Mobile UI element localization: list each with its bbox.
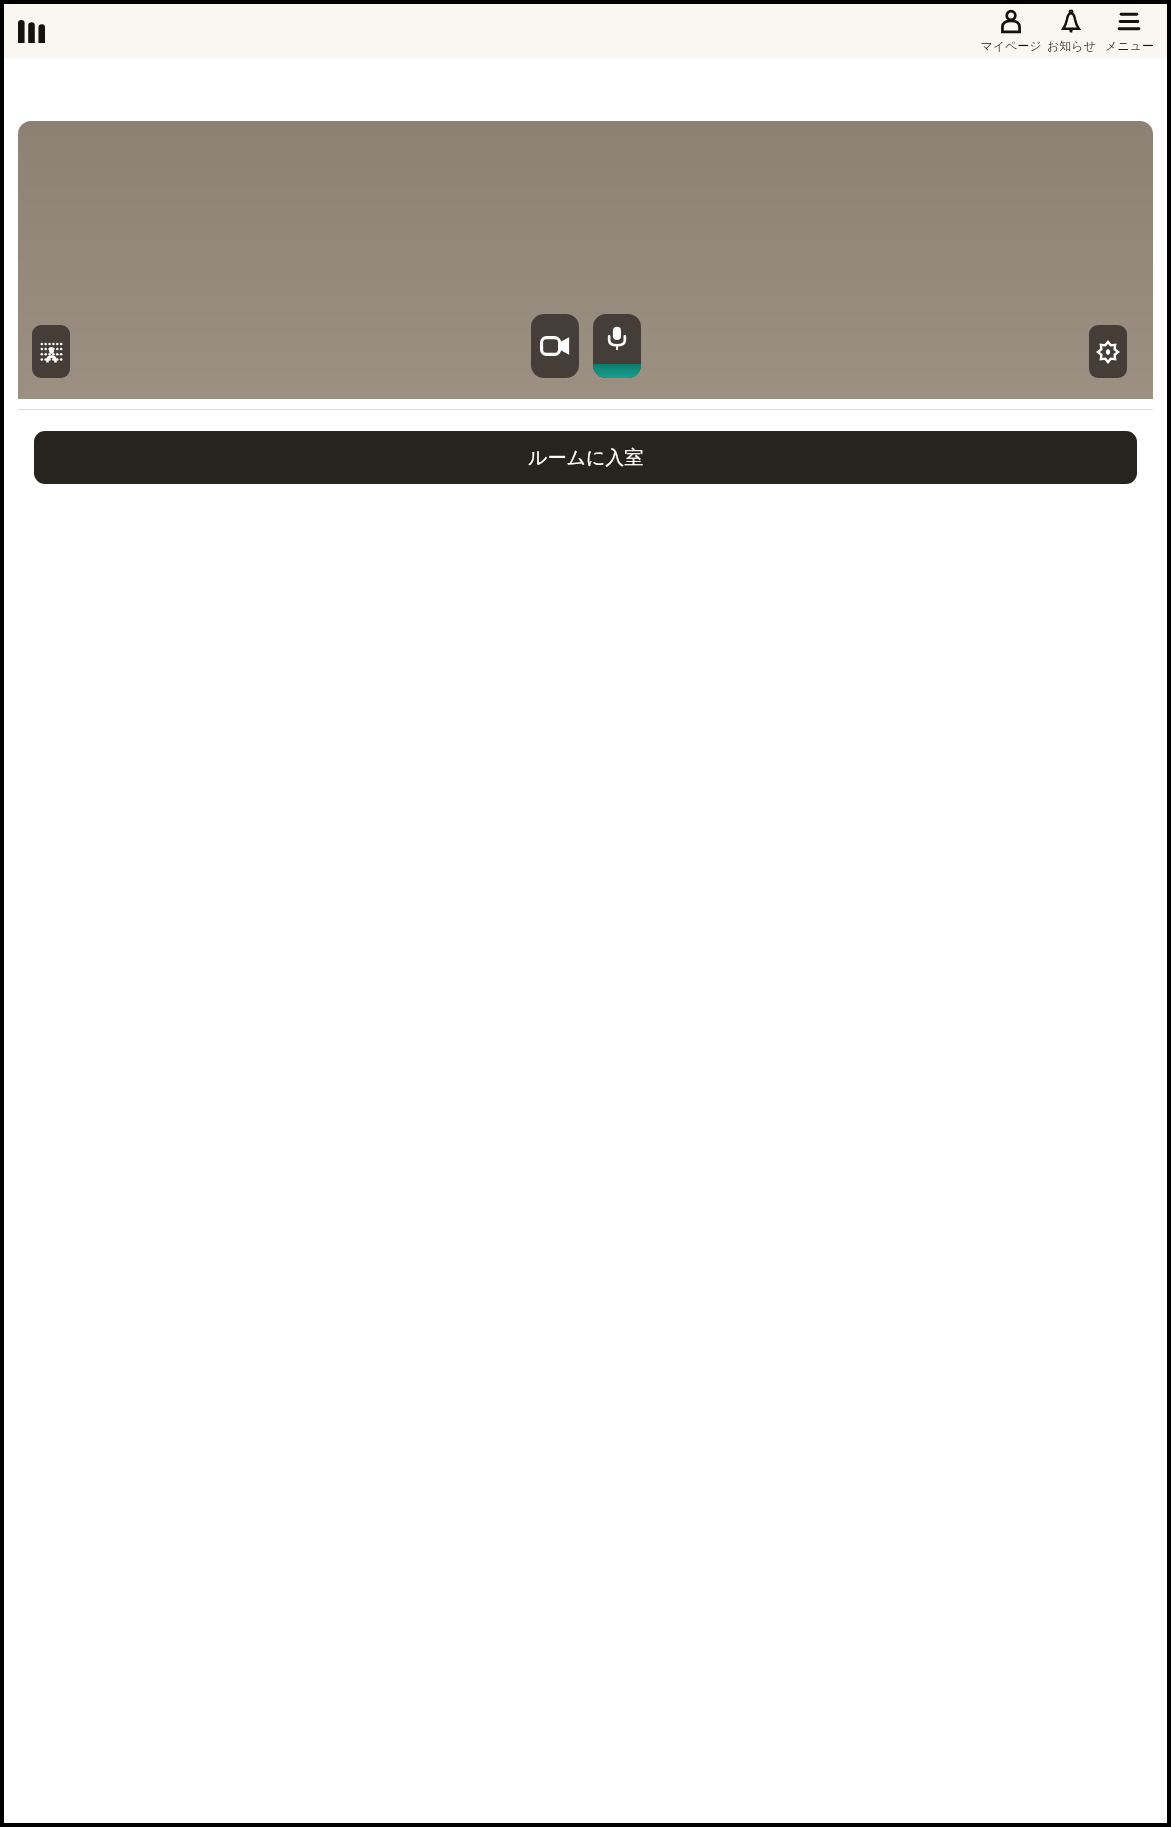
button[interactable]: Home logo [18, 19, 46, 43]
button[interactable]: メニュー [1099, 4, 1159, 58]
button[interactable]: お知らせ [1043, 4, 1099, 58]
staticText: お知らせ [1047, 38, 1096, 53]
button[interactable]: Settings [1089, 325, 1127, 378]
button[interactable]: Effects [32, 325, 70, 378]
staticText: メニュー [1105, 38, 1154, 53]
button[interactable]: ルームに入室 [34, 431, 1137, 484]
button[interactable]: マイページ [979, 4, 1043, 58]
staticText: マイページ [980, 38, 1042, 53]
button[interactable]: Microphone [593, 314, 641, 378]
button[interactable]: Camera [531, 314, 579, 378]
staticText: ルームに入室 [528, 446, 644, 470]
